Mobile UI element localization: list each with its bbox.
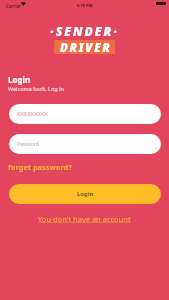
- button[interactable]: Login: [9, 184, 161, 204]
- button[interactable]: You don't have an account: [38, 214, 131, 224]
- button[interactable]: Password: [9, 134, 161, 154]
- button[interactable]: XXXXXXXXX: [9, 104, 161, 124]
- staticText: Login: [8, 74, 31, 85]
- other: Wi-Fi signal: [21, 2, 26, 6]
- staticText: Password: [17, 141, 39, 148]
- staticText: Welcome back, Log in: [8, 85, 64, 92]
- staticText: ·SENDER·: [50, 23, 119, 39]
- staticText: Carrier: [6, 3, 22, 9]
- staticText: 5:15 PM: [77, 3, 93, 9]
- staticText: You don't have an account: [38, 214, 131, 224]
- other: Battery: [156, 2, 166, 5]
- button[interactable]: forget password?: [8, 162, 72, 172]
- staticText: XXXXXXXXX: [17, 110, 48, 118]
- staticText: Login: [77, 190, 94, 198]
- staticText: DRIVER: [60, 40, 112, 54]
- staticText: forget password?: [8, 162, 72, 172]
